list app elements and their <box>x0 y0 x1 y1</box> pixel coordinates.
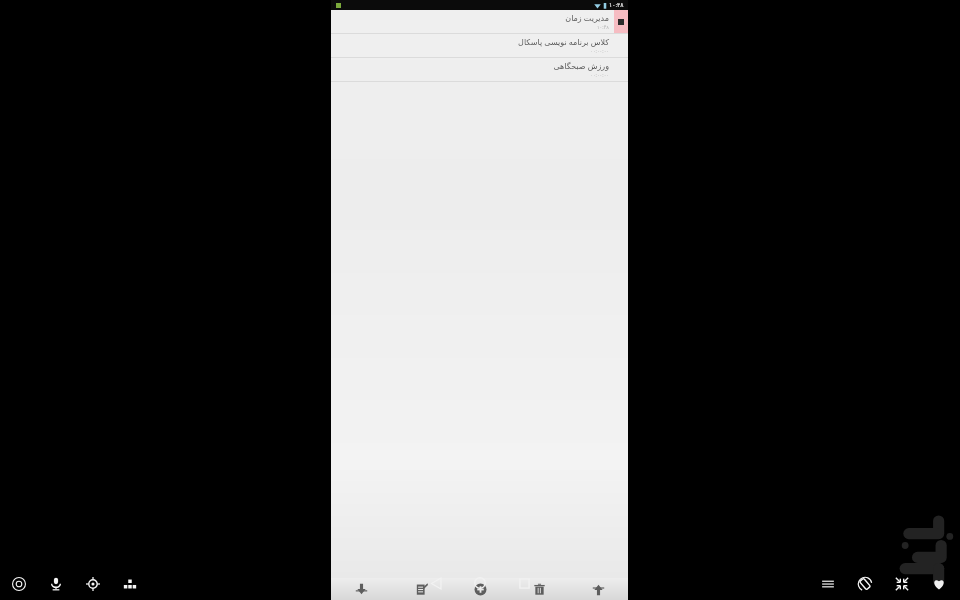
staticText: مدیریت زمان <box>565 12 609 23</box>
button[interactable]: مدیریت زمان <box>331 10 628 33</box>
button[interactable]: Rotate screen <box>852 571 878 597</box>
button[interactable]: Edit note <box>391 578 451 600</box>
button[interactable]: ورزش صبحگاهی <box>331 58 628 81</box>
button[interactable]: Export <box>569 578 628 600</box>
button[interactable]: Screenshot <box>6 571 32 597</box>
button[interactable]: Back <box>423 570 449 596</box>
staticText: کلاس برنامه نویسی پاسکال <box>518 36 609 47</box>
button[interactable]: Import <box>331 578 391 600</box>
button[interactable]: Delete <box>510 578 569 600</box>
staticText: ورزش صبحگاهی <box>553 60 609 71</box>
staticText: ۰۰:۰۰:۰۰ <box>590 48 609 55</box>
button[interactable]: Collapse <box>889 571 915 597</box>
button[interactable]: Microphone <box>43 571 69 597</box>
button[interactable]: Stop timer <box>614 10 628 33</box>
staticText: ۰۰:۰۰:۰۰ <box>590 72 609 79</box>
button[interactable]: Menu <box>815 571 841 597</box>
staticText: ۱۰:۴۸ <box>609 1 624 9</box>
staticText: ۱۰:۴۸ <box>596 24 609 31</box>
button[interactable]: Favorite <box>926 571 952 597</box>
button[interactable]: Location <box>80 571 106 597</box>
button[interactable]: Home <box>467 570 493 596</box>
button[interactable]: Add task <box>451 578 510 600</box>
button[interactable]: کلاس برنامه نویسی پاسکال <box>331 34 628 57</box>
button[interactable]: Recent apps <box>511 570 537 596</box>
button[interactable]: Apps <box>117 571 143 597</box>
